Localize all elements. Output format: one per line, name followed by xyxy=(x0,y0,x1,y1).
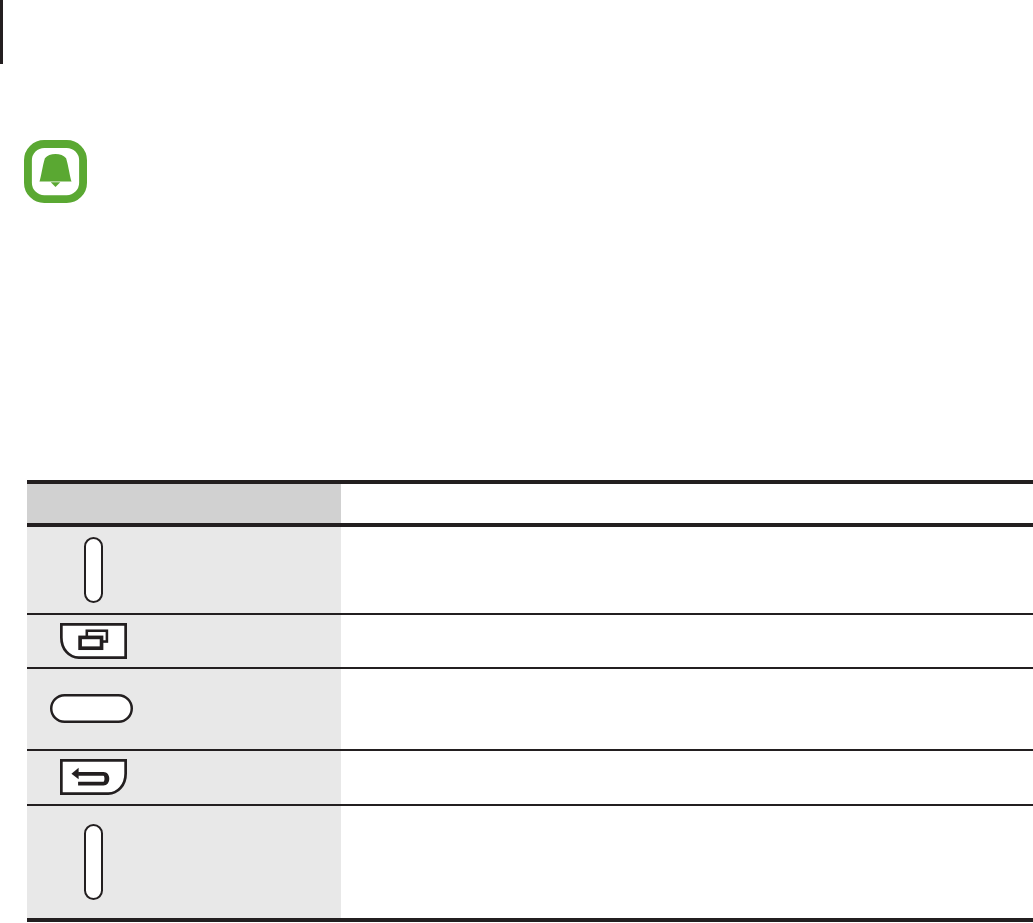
button[interactable]: Recents key xyxy=(0,615,1033,667)
button[interactable]: Notification xyxy=(24,140,87,203)
button[interactable]: Back key xyxy=(0,751,1033,804)
button[interactable]: Home key xyxy=(50,694,133,723)
button[interactable]: Side key xyxy=(0,527,1033,613)
button[interactable]: Side key xyxy=(84,537,103,603)
button[interactable]: Volume key xyxy=(0,806,1033,918)
button[interactable]: Back key xyxy=(60,759,127,795)
button[interactable]: Volume key xyxy=(84,824,103,900)
button[interactable]: Recents key xyxy=(60,623,127,659)
button[interactable]: Home key xyxy=(0,669,1033,749)
